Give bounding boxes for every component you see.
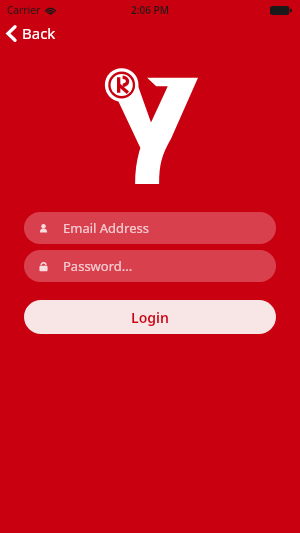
- staticText: Back: [22, 23, 56, 43]
- button[interactable]: Back: [0, 20, 300, 46]
- button[interactable]: Password...: [24, 250, 276, 282]
- staticText: Password...: [63, 257, 133, 275]
- staticText: Login: [131, 308, 169, 327]
- staticText: 2:06 PM: [131, 3, 169, 17]
- button[interactable]: Login: [24, 300, 276, 334]
- button[interactable]: Email Address: [24, 212, 276, 244]
- staticText: Carrier: [7, 3, 41, 17]
- staticText: Email Address: [63, 219, 149, 237]
